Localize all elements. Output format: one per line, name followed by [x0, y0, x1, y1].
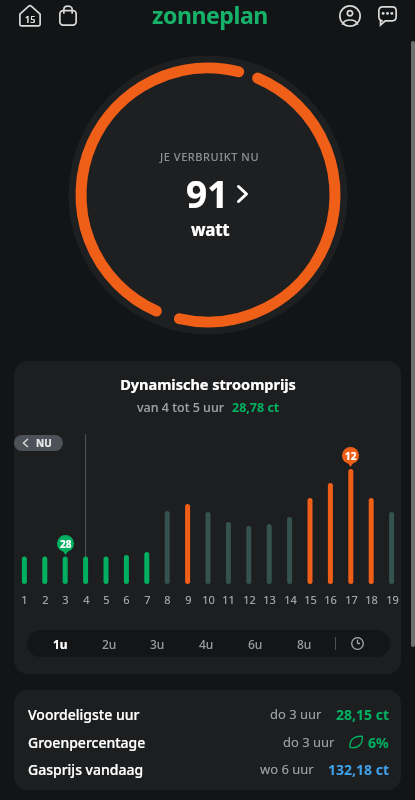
staticText: 17	[345, 592, 358, 607]
staticText: 19	[386, 592, 399, 607]
button[interactable]: Pick time range	[344, 630, 370, 657]
staticText: 5	[103, 592, 110, 607]
staticText: NU	[36, 436, 52, 450]
button[interactable]: Home, 15 days	[13, 0, 46, 32]
staticText: wo 6 uur	[260, 760, 314, 778]
staticText: 8	[164, 592, 171, 607]
staticText: 91	[186, 168, 229, 218]
staticText: 9	[185, 592, 192, 607]
button[interactable]: 2u	[92, 630, 126, 657]
staticText: 6%	[368, 733, 389, 752]
button[interactable]: 3u	[140, 630, 174, 657]
button[interactable]: Account	[333, 0, 366, 32]
staticText: 6	[123, 592, 130, 607]
staticText: do 3 uur	[283, 733, 335, 751]
button[interactable]: NU	[14, 435, 63, 451]
staticText: 11	[222, 592, 235, 607]
staticText: 18	[365, 592, 378, 607]
staticText: 1	[21, 592, 28, 607]
staticText: JE VERBRUIKT NU	[160, 149, 260, 164]
staticText: 3	[62, 592, 69, 607]
button[interactable]: 6u	[238, 630, 272, 657]
button[interactable]: Groenpercentage	[14, 730, 401, 754]
staticText: watt	[191, 218, 230, 241]
staticText: 15	[25, 13, 36, 25]
staticText: 16	[324, 592, 337, 607]
staticText: 4u	[199, 636, 214, 652]
button[interactable]: Chat	[371, 0, 404, 32]
staticText: Dynamische stroomprijs	[120, 374, 296, 394]
staticText: zonneplan	[152, 0, 268, 30]
staticText: 28,15 ct	[336, 705, 389, 724]
staticText: Gasprijs vandaag	[28, 760, 144, 779]
staticText: 132,18 ct	[328, 760, 389, 779]
button[interactable]: Voordeligste uur	[14, 702, 401, 726]
staticText: 13	[263, 592, 276, 607]
staticText: Groenpercentage	[28, 733, 146, 752]
staticText: 12	[345, 449, 357, 463]
staticText: 28,78 ct	[232, 399, 280, 416]
button[interactable]: 8u	[287, 630, 321, 657]
staticText: 10	[202, 592, 215, 607]
button[interactable]: JE VERBRUIKT NU	[110, 149, 310, 249]
staticText: 28	[60, 537, 72, 551]
button[interactable]: 4u	[189, 630, 223, 657]
staticText: 2	[42, 592, 49, 607]
staticText: 1u	[53, 636, 68, 652]
staticText: 2u	[102, 636, 117, 652]
button[interactable]: 1u	[43, 630, 77, 657]
staticText: 4	[83, 592, 90, 607]
staticText: 6u	[248, 636, 263, 652]
staticText: do 3 uur	[270, 705, 322, 723]
staticText: 8u	[297, 636, 312, 652]
staticText: 3u	[150, 636, 165, 652]
staticText: Voordeligste uur	[28, 705, 140, 724]
staticText: 14	[284, 592, 297, 607]
button[interactable]: Gasprijs vandaag	[14, 757, 401, 781]
staticText: 15	[304, 592, 317, 607]
staticText: 12	[243, 592, 256, 607]
button[interactable]: Shop	[51, 0, 84, 32]
staticText: van 4 tot 5 uur	[137, 399, 225, 416]
staticText: 7	[144, 592, 151, 607]
